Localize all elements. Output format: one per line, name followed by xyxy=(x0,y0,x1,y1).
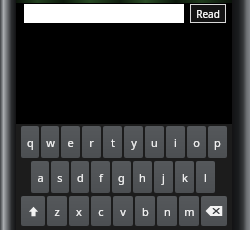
button[interactable]: c xyxy=(91,196,111,226)
staticText: w xyxy=(46,135,55,150)
staticText: f xyxy=(99,170,103,185)
staticText: n xyxy=(164,204,171,219)
staticText: d xyxy=(77,170,84,185)
staticText: e xyxy=(67,135,74,150)
button[interactable]: h xyxy=(133,161,152,193)
button[interactable]: m xyxy=(179,196,199,226)
staticText: k xyxy=(182,170,188,185)
staticText: p xyxy=(214,135,221,150)
button[interactable]: q xyxy=(21,126,39,158)
staticText: x xyxy=(76,204,82,219)
button[interactable]: Shift xyxy=(21,196,45,226)
button[interactable]: n xyxy=(157,196,177,226)
button[interactable]: f xyxy=(91,161,110,193)
staticText: b xyxy=(142,204,149,219)
staticText: h xyxy=(139,170,146,185)
staticText: t xyxy=(111,135,115,150)
button[interactable]: a xyxy=(31,161,49,193)
button[interactable]: y xyxy=(124,126,143,158)
staticText: g xyxy=(118,170,125,185)
staticText: Read xyxy=(196,7,220,21)
button[interactable]: b xyxy=(135,196,155,226)
button[interactable]: g xyxy=(112,161,131,193)
staticText: c xyxy=(98,204,104,219)
button[interactable]: w xyxy=(41,126,59,158)
button[interactable]: d xyxy=(71,161,89,193)
staticText: j xyxy=(162,170,165,185)
staticText: i xyxy=(174,135,177,150)
staticText: v xyxy=(120,204,126,219)
staticText: s xyxy=(57,170,63,185)
button[interactable]: i xyxy=(166,126,185,158)
staticText: q xyxy=(27,135,34,150)
button[interactable]: u xyxy=(145,126,164,158)
staticText: r xyxy=(89,135,94,150)
button[interactable]: Backspace xyxy=(201,196,227,226)
button[interactable]: s xyxy=(51,161,69,193)
staticText: a xyxy=(37,170,44,185)
button[interactable]: j xyxy=(154,161,173,193)
button[interactable]: Read xyxy=(190,4,226,23)
button[interactable]: l xyxy=(196,161,215,193)
staticText: m xyxy=(184,204,195,219)
button[interactable]: t xyxy=(103,126,122,158)
button[interactable]: r xyxy=(82,126,101,158)
staticText: u xyxy=(151,135,158,150)
button[interactable]: p xyxy=(208,126,227,158)
button[interactable]: v xyxy=(113,196,133,226)
staticText: y xyxy=(131,135,137,150)
staticText: z xyxy=(54,204,60,219)
staticText: l xyxy=(204,170,207,185)
button[interactable]: e xyxy=(61,126,80,158)
staticText: o xyxy=(193,135,200,150)
button[interactable]: x xyxy=(69,196,89,226)
button[interactable]: o xyxy=(187,126,206,158)
button[interactable]: z xyxy=(47,196,67,226)
button[interactable]: k xyxy=(175,161,194,193)
